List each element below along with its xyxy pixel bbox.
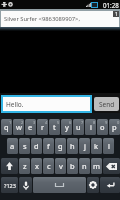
staticText: o xyxy=(100,122,105,132)
staticText: r xyxy=(41,122,45,132)
staticText: s xyxy=(23,141,27,151)
staticText: 6 xyxy=(69,120,72,125)
button[interactable]: i xyxy=(85,119,96,135)
button[interactable]: s xyxy=(19,138,30,154)
staticText: j xyxy=(84,141,86,151)
staticText: k xyxy=(94,141,99,151)
button[interactable]: Shift xyxy=(1,158,18,174)
button[interactable]: Hello. xyxy=(3,97,90,111)
staticText: i xyxy=(90,122,92,132)
button[interactable]: x xyxy=(31,158,42,174)
staticText: h xyxy=(70,141,75,151)
staticText: p xyxy=(112,122,117,132)
staticText: e xyxy=(28,122,33,132)
staticText: 9 xyxy=(105,120,108,125)
staticText: Send xyxy=(99,100,115,109)
staticText: 7 xyxy=(81,120,84,125)
staticText: z xyxy=(23,161,27,171)
button[interactable]: Enter xyxy=(100,177,120,193)
staticText: Silver Surfer <9863089907>, xyxy=(4,15,80,23)
staticText: f xyxy=(47,141,50,151)
button[interactable]: q xyxy=(1,119,12,135)
button[interactable]: Send xyxy=(94,97,119,111)
button[interactable]: c xyxy=(43,158,54,174)
button[interactable]: Space xyxy=(33,177,86,193)
button[interactable]: d xyxy=(31,138,42,154)
staticText: d xyxy=(34,141,39,151)
staticText: u xyxy=(76,122,81,132)
staticText: a xyxy=(10,141,15,151)
staticText: l xyxy=(108,141,110,151)
button[interactable]: v xyxy=(55,158,66,174)
button[interactable]: f xyxy=(43,138,54,154)
staticText: y xyxy=(65,122,69,132)
button[interactable]: w xyxy=(13,119,24,135)
staticText: t xyxy=(53,122,56,132)
staticText: n xyxy=(82,161,87,171)
staticText: 3 xyxy=(33,120,36,125)
staticText: 0 xyxy=(117,120,120,125)
button[interactable]: n xyxy=(79,158,90,174)
staticText: 8 xyxy=(93,120,96,125)
staticText: x xyxy=(35,161,39,171)
staticText: b xyxy=(70,161,75,171)
button[interactable]: l xyxy=(103,138,114,154)
staticText: q xyxy=(4,122,9,132)
button[interactable]: Voice input xyxy=(19,177,32,193)
staticText: 4 xyxy=(45,120,48,125)
staticText: c xyxy=(47,161,51,171)
button[interactable]: e xyxy=(25,119,36,135)
staticText: 5 xyxy=(57,120,60,125)
button[interactable]: r xyxy=(37,119,48,135)
staticText: 2 xyxy=(21,120,24,125)
button[interactable]: ?123 xyxy=(1,177,18,193)
button[interactable]: t xyxy=(49,119,60,135)
staticText: m xyxy=(93,161,101,171)
button[interactable]: y xyxy=(61,119,72,135)
button[interactable]: Settings xyxy=(87,177,99,193)
staticText: v xyxy=(59,161,63,171)
staticText: ?123 xyxy=(4,182,16,189)
button[interactable]: u xyxy=(73,119,84,135)
button[interactable]: h xyxy=(67,138,78,154)
button[interactable]: z xyxy=(19,158,30,174)
button[interactable]: k xyxy=(91,138,102,154)
button[interactable]: g xyxy=(55,138,66,154)
staticText: 01:28 xyxy=(103,1,119,9)
button[interactable]: j xyxy=(79,138,90,154)
button[interactable]: o xyxy=(97,119,108,135)
staticText: g xyxy=(58,141,63,151)
button[interactable]: m xyxy=(91,158,102,174)
button[interactable]: b xyxy=(67,158,78,174)
staticText: 1 xyxy=(115,11,118,17)
staticText: Hello. xyxy=(6,100,24,109)
button[interactable]: a xyxy=(7,138,18,154)
button[interactable]: p xyxy=(109,119,120,135)
button[interactable]: Backspace xyxy=(103,158,120,174)
staticText: w xyxy=(16,122,22,132)
staticText: 1 xyxy=(9,120,12,125)
button[interactable]: Silver Surfer <9863089907>, xyxy=(1,11,119,27)
